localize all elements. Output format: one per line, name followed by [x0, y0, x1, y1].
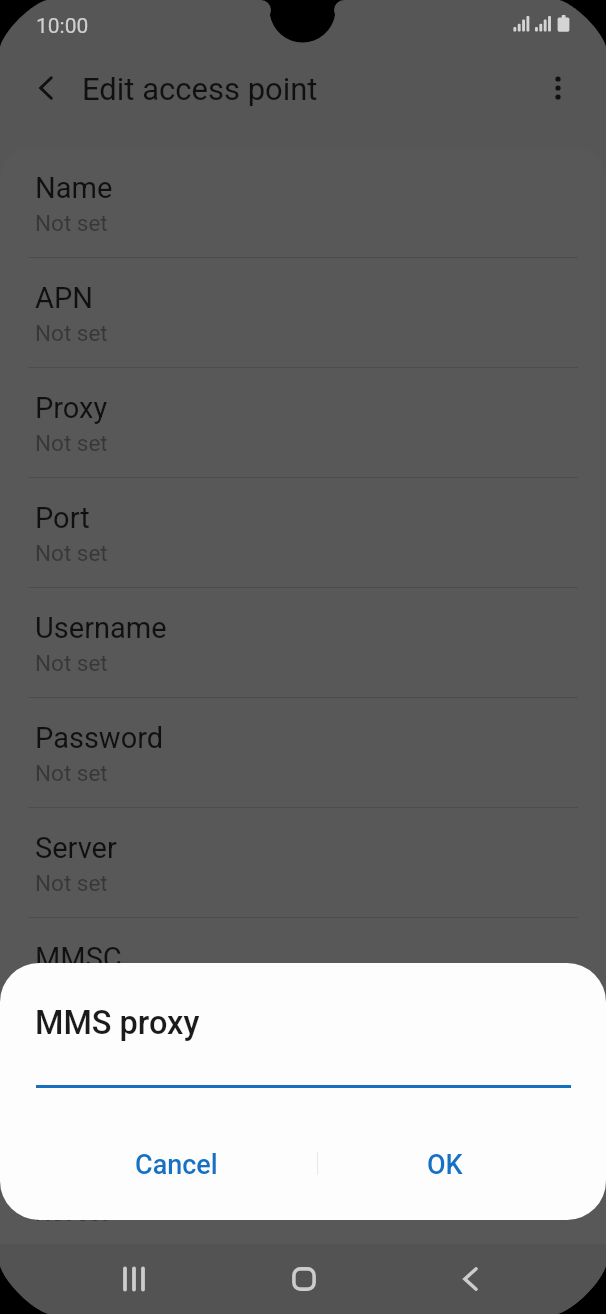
- staticText: Not set: [35, 1200, 108, 1226]
- staticText: Server: [35, 831, 117, 865]
- staticText: Edit access point: [82, 71, 318, 107]
- staticText: Not set: [35, 650, 108, 676]
- button[interactable]: Home: [269, 1244, 339, 1314]
- staticText: Not set: [35, 870, 108, 896]
- staticText: Not set: [35, 540, 108, 566]
- button[interactable]: Server: [0, 808, 606, 918]
- button[interactable]: Name: [0, 148, 606, 258]
- staticText: APN: [35, 281, 93, 315]
- button[interactable]: Password: [0, 698, 606, 808]
- staticText: 10:00: [36, 14, 89, 39]
- staticText: Not set: [35, 430, 108, 456]
- staticText: Port: [35, 501, 90, 535]
- staticText: Not set: [35, 760, 108, 786]
- button[interactable]: More options: [535, 65, 581, 111]
- staticText: Cancel: [135, 1149, 218, 1181]
- staticText: Name: [35, 171, 113, 205]
- button[interactable]: MMS port: [0, 1138, 606, 1244]
- button[interactable]: MMS proxy: [0, 1028, 606, 1138]
- button[interactable]: Navigate up: [23, 65, 69, 111]
- staticText: Not set: [35, 320, 108, 346]
- staticText: Password: [35, 721, 164, 755]
- button[interactable]: Port: [0, 478, 606, 588]
- staticText: MMSC: [35, 941, 122, 975]
- button[interactable]: Username: [0, 588, 606, 698]
- staticText: MMS port: [35, 1161, 163, 1195]
- staticText: OK: [427, 1149, 463, 1181]
- button[interactable]: APN: [0, 258, 606, 368]
- button[interactable]: Cancel: [36, 1130, 317, 1200]
- button[interactable]: Proxy: [0, 368, 606, 478]
- staticText: Not set: [35, 210, 108, 236]
- button[interactable]: Recent apps: [99, 1244, 169, 1314]
- staticText: Username: [35, 611, 167, 645]
- button[interactable]: OK: [318, 1130, 572, 1200]
- staticText: MMS proxy: [35, 1004, 200, 1042]
- button[interactable]: Back: [435, 1244, 505, 1314]
- staticText: Proxy: [35, 391, 108, 425]
- button[interactable]: MMSC: [0, 918, 606, 1028]
